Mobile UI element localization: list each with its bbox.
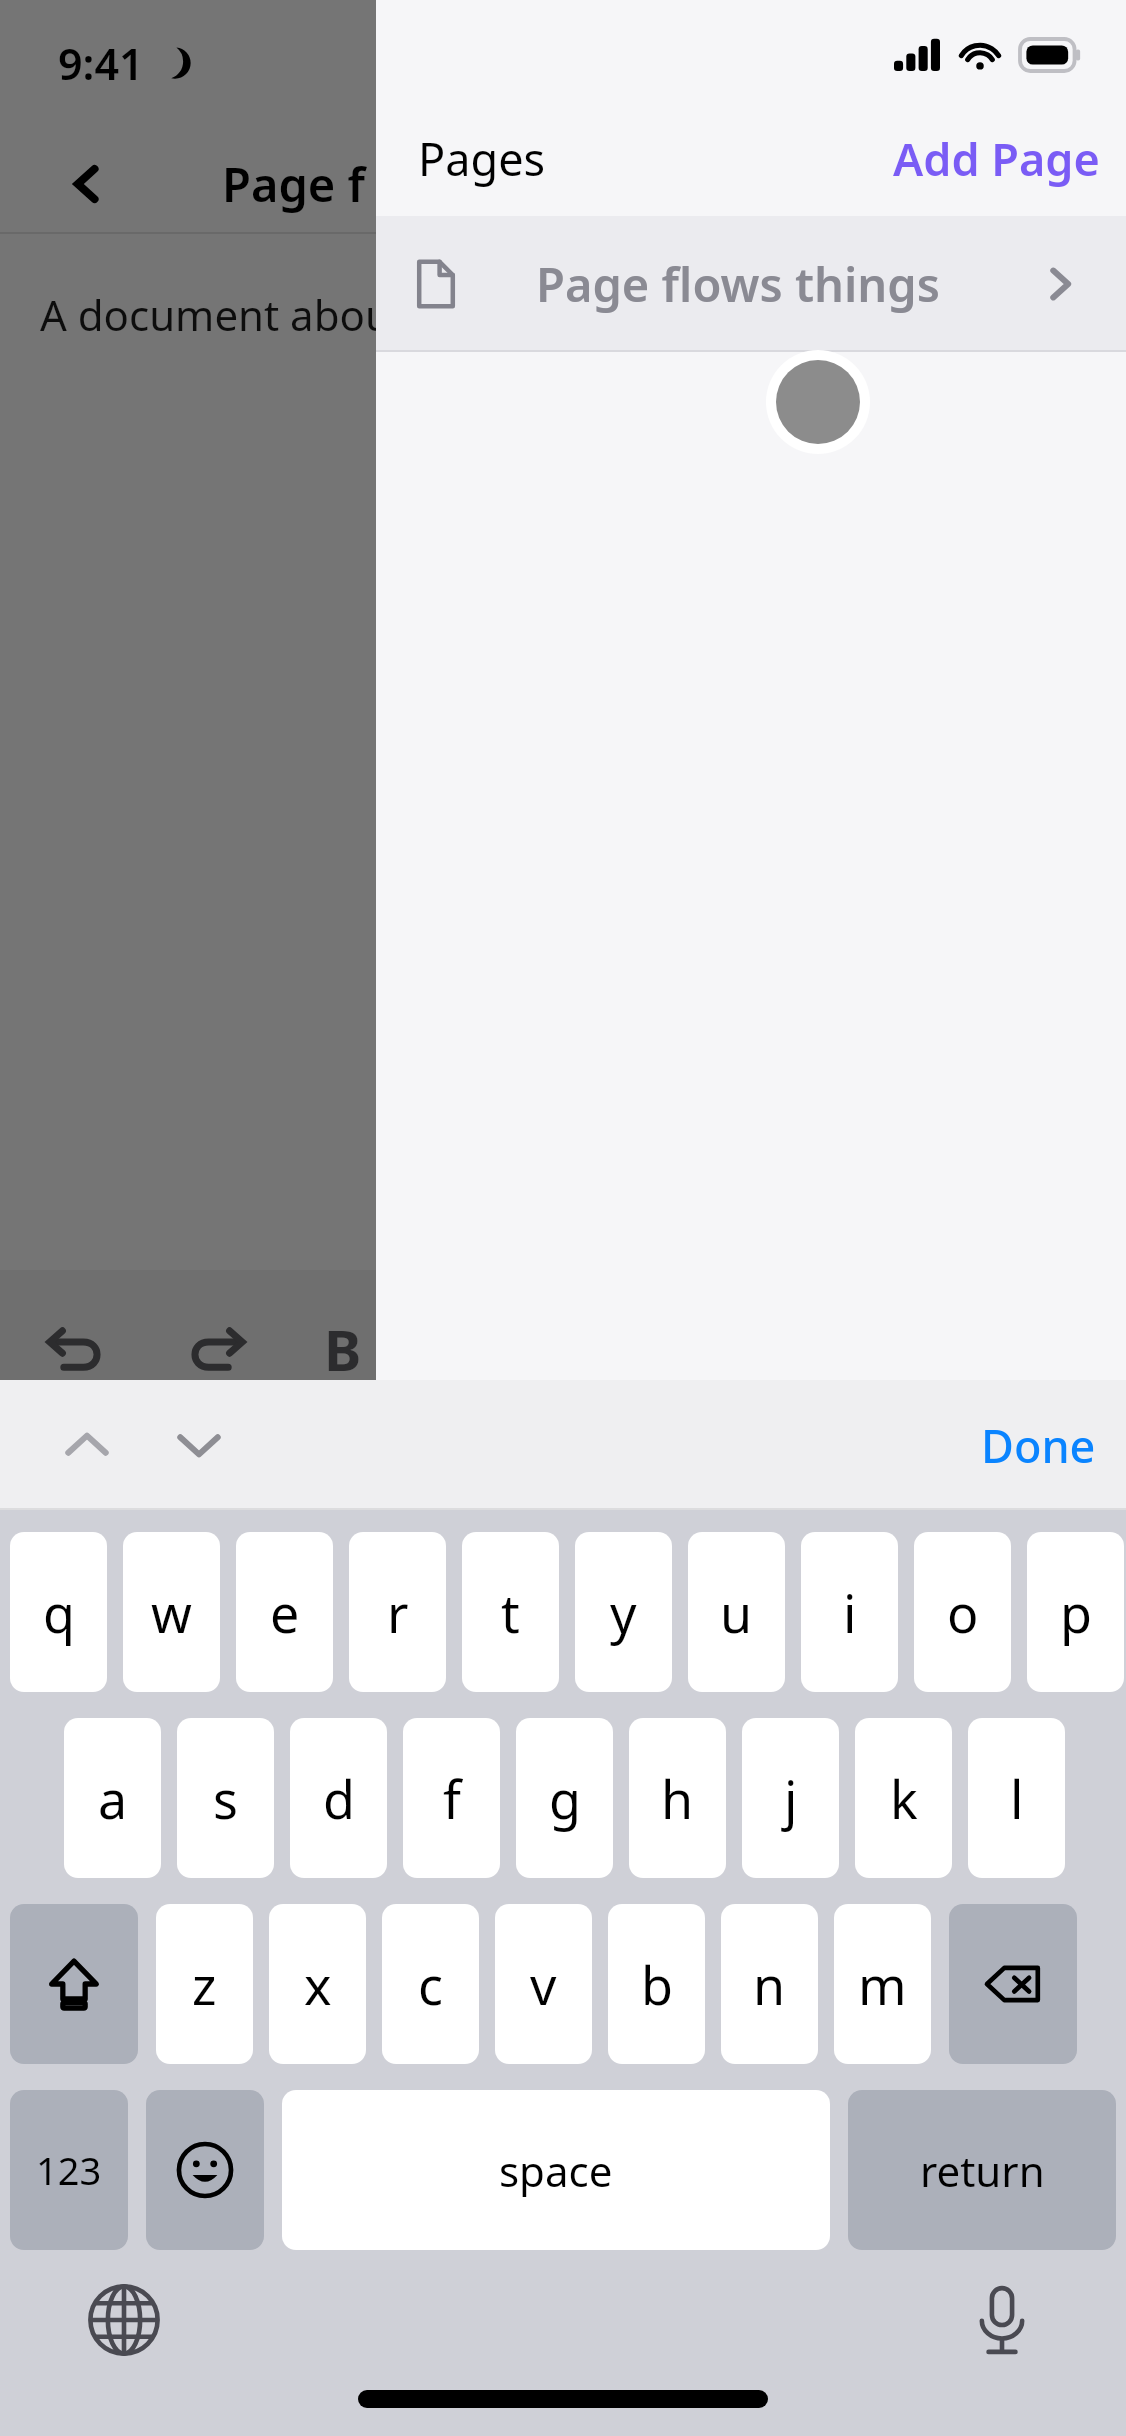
staticText: Add Page bbox=[893, 128, 1100, 189]
staticText: y bbox=[610, 1577, 637, 1648]
button[interactable]: w bbox=[123, 1532, 220, 1692]
button[interactable]: v bbox=[495, 1904, 592, 2064]
staticText: d bbox=[323, 1763, 355, 1834]
staticText: 123 bbox=[36, 2144, 102, 2196]
staticText: n bbox=[753, 1949, 786, 2020]
staticText: m bbox=[858, 1949, 907, 2020]
staticText: b bbox=[641, 1949, 673, 2020]
button[interactable]: o bbox=[914, 1532, 1011, 1692]
button[interactable]: p bbox=[1027, 1532, 1124, 1692]
button[interactable]: y bbox=[575, 1532, 672, 1692]
button[interactable]: d bbox=[290, 1718, 387, 1878]
staticText: return bbox=[920, 2142, 1045, 2199]
staticText: A document abou bbox=[40, 286, 391, 343]
button[interactable]: Backspace bbox=[949, 1904, 1077, 2064]
button[interactable]: f bbox=[403, 1718, 500, 1878]
button[interactable]: q bbox=[10, 1532, 107, 1692]
staticText: B bbox=[324, 1311, 362, 1387]
button[interactable]: c bbox=[382, 1904, 479, 2064]
staticText: v bbox=[530, 1949, 557, 2020]
staticText: s bbox=[213, 1763, 238, 1834]
button[interactable]: j bbox=[742, 1718, 839, 1878]
button[interactable]: k bbox=[855, 1718, 952, 1878]
button[interactable]: z bbox=[156, 1904, 253, 2064]
button[interactable]: s bbox=[177, 1718, 274, 1878]
button[interactable]: Emoji bbox=[146, 2090, 264, 2250]
staticText: q bbox=[43, 1577, 75, 1648]
staticText: z bbox=[192, 1949, 217, 2020]
button[interactable]: Shift bbox=[10, 1904, 138, 2064]
button[interactable]: 123 bbox=[10, 2090, 128, 2250]
staticText: e bbox=[270, 1577, 300, 1648]
staticText: t bbox=[501, 1577, 520, 1648]
staticText: k bbox=[890, 1763, 918, 1834]
button[interactable]: h bbox=[629, 1718, 726, 1878]
staticText: a bbox=[98, 1763, 128, 1834]
button[interactable]: Switch language bbox=[82, 2278, 166, 2362]
button[interactable]: u bbox=[688, 1532, 785, 1692]
button[interactable]: Next field bbox=[160, 1406, 238, 1484]
staticText: Page f bbox=[222, 152, 365, 216]
button[interactable]: i bbox=[801, 1532, 898, 1692]
staticText: f bbox=[443, 1763, 461, 1834]
button[interactable]: b bbox=[608, 1904, 705, 2064]
button[interactable]: Done bbox=[951, 1399, 1126, 1492]
staticText: r bbox=[387, 1577, 409, 1648]
button[interactable]: r bbox=[349, 1532, 446, 1692]
button[interactable]: x bbox=[269, 1904, 366, 2064]
button[interactable]: e bbox=[236, 1532, 333, 1692]
button[interactable]: m bbox=[834, 1904, 931, 2064]
button[interactable]: Previous field bbox=[48, 1406, 126, 1484]
button[interactable]: g bbox=[516, 1718, 613, 1878]
button[interactable]: Undo bbox=[40, 1314, 110, 1384]
button[interactable]: Redo bbox=[182, 1314, 252, 1384]
button[interactable]: l bbox=[968, 1718, 1065, 1878]
button[interactable]: Add Page bbox=[867, 112, 1126, 205]
staticText: j bbox=[784, 1763, 798, 1834]
button[interactable]: n bbox=[721, 1904, 818, 2064]
staticText: l bbox=[1010, 1763, 1024, 1834]
staticText: i bbox=[843, 1577, 857, 1648]
staticText: p bbox=[1060, 1577, 1092, 1648]
button[interactable]: Dictation bbox=[960, 2278, 1044, 2362]
button[interactable]: t bbox=[462, 1532, 559, 1692]
staticText: h bbox=[661, 1763, 694, 1834]
button[interactable]: a bbox=[64, 1718, 161, 1878]
staticText: u bbox=[720, 1577, 753, 1648]
button[interactable]: space bbox=[282, 2090, 830, 2250]
staticText: g bbox=[549, 1763, 581, 1834]
staticText: o bbox=[947, 1577, 979, 1648]
button[interactable]: Page flows things bbox=[376, 216, 1126, 352]
staticText: Done bbox=[981, 1415, 1096, 1476]
staticText: Pages bbox=[418, 128, 546, 189]
staticText: 9:41 bbox=[58, 34, 144, 93]
staticText: w bbox=[151, 1577, 192, 1648]
staticText: space bbox=[499, 2142, 613, 2199]
button[interactable]: return bbox=[848, 2090, 1116, 2250]
staticText: Page flows things bbox=[536, 252, 940, 316]
staticText: c bbox=[418, 1949, 443, 2020]
staticText: x bbox=[304, 1949, 332, 2020]
button[interactable]: Back bbox=[60, 157, 114, 211]
